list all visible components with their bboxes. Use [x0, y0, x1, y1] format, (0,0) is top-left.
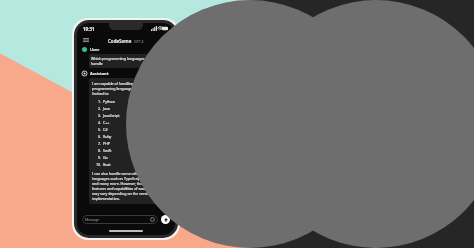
other: Voice input [150, 217, 155, 222]
staticText: 3. [95, 113, 101, 118]
staticText: C++ [103, 120, 110, 125]
staticText: 8. [95, 148, 101, 153]
staticText: 10. [95, 162, 101, 167]
staticText: I can also handle some other programming… [92, 171, 167, 201]
staticText: Assistant [90, 71, 109, 76]
button[interactable]: Menu [82, 34, 170, 47]
staticText: 9. [95, 155, 101, 160]
staticText: C# [103, 127, 108, 132]
staticText: CodeSome [108, 38, 132, 44]
staticText: Swift [103, 148, 112, 153]
button[interactable]: Send [161, 215, 170, 224]
staticText: Go [103, 155, 108, 160]
staticText: 19:31 [83, 26, 95, 32]
staticText: Which programming languages can you hand… [91, 56, 168, 66]
staticText: Message [85, 217, 100, 222]
staticText: Python [103, 99, 115, 104]
staticText: Ruby [103, 134, 112, 139]
staticText: 5. [95, 127, 101, 132]
button[interactable]: Message [82, 215, 158, 224]
staticText: 2. [95, 106, 101, 111]
staticText: 1. [95, 99, 101, 104]
staticText: 6. [95, 134, 101, 139]
staticText: GPT-4 [134, 39, 144, 44]
staticText: JavaScript [103, 113, 120, 118]
staticText: 7. [95, 141, 101, 146]
staticText: PHP [103, 141, 111, 146]
staticText: I am capable of handling a wide range of… [92, 81, 167, 96]
staticText: User [90, 47, 100, 52]
button[interactable]: Menu [82, 37, 89, 44]
staticText: Rust [103, 162, 111, 167]
staticText: Java [103, 106, 110, 111]
staticText: 4. [95, 120, 101, 125]
